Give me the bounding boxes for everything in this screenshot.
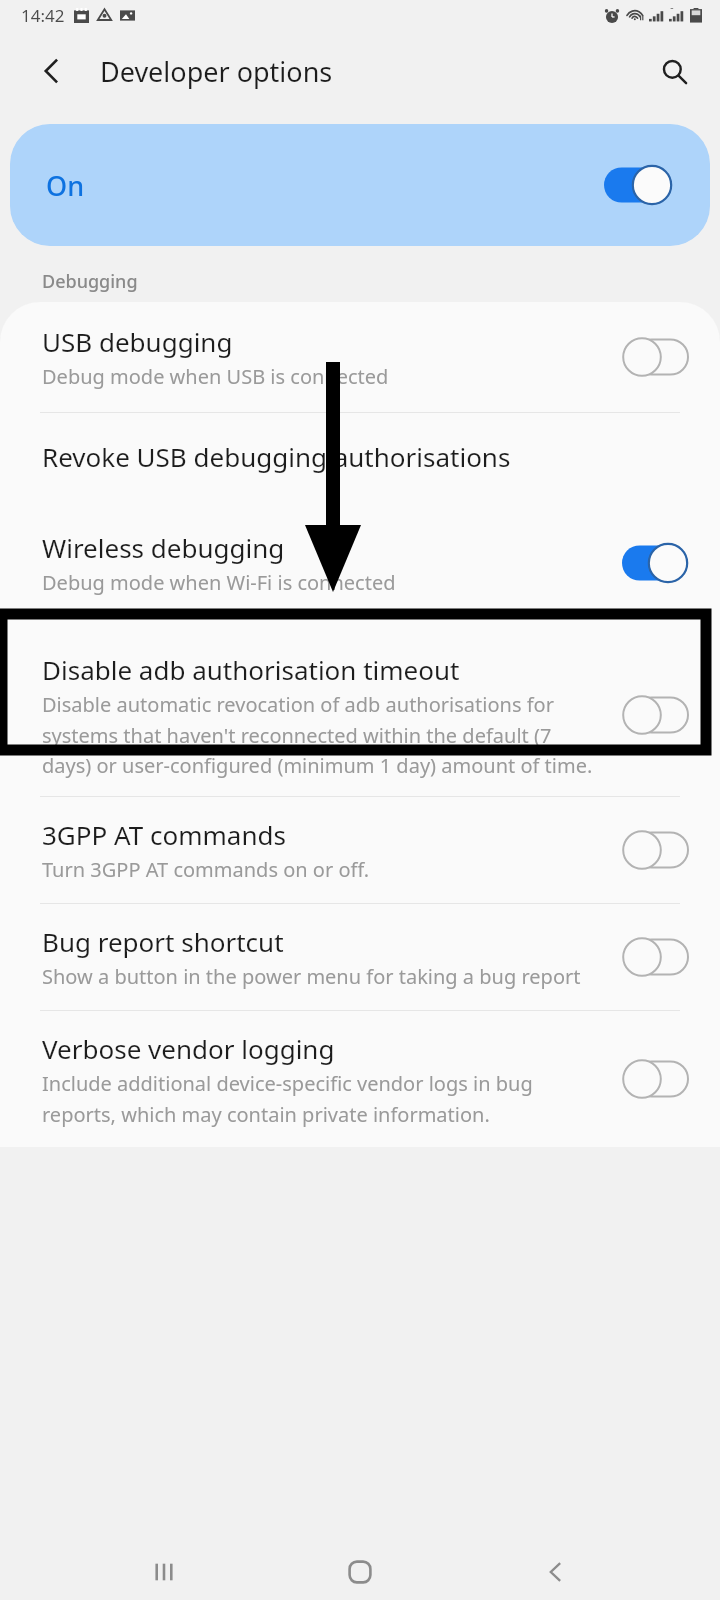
button[interactable]: Toggle off (622, 695, 688, 735)
staticText: Wireless debugging (42, 530, 285, 565)
button[interactable]: Toggle on (622, 543, 688, 583)
staticText: On (46, 167, 85, 204)
button[interactable]: Toggle off (622, 830, 688, 870)
button[interactable]: Disable adb authorisation timeout (0, 632, 720, 796)
staticText: Debug mode when Wi-Fi is connected (42, 569, 396, 596)
staticText: Debug mode when USB is connected (42, 363, 389, 390)
button[interactable]: Verbose vendor logging (0, 1011, 720, 1147)
staticText: Disable automatic revocation of adb auth… (42, 691, 598, 778)
button[interactable]: Search (650, 47, 698, 95)
staticText: Include additional device-specific vendo… (42, 1070, 598, 1127)
button[interactable]: 3GPP AT commands (0, 797, 720, 903)
staticText: Developer options (100, 53, 333, 90)
button[interactable]: Toggle off (622, 937, 688, 977)
button[interactable]: Home (328, 1544, 392, 1600)
staticText: Turn 3GPP AT commands on or off. (42, 856, 370, 883)
button[interactable]: Back (28, 47, 76, 95)
button[interactable]: On (10, 124, 710, 246)
staticText: Bug report shortcut (42, 924, 284, 959)
staticText: 3GPP AT commands (42, 817, 286, 852)
button[interactable]: USB debugging (0, 302, 720, 412)
button[interactable]: Bug report shortcut (0, 904, 720, 1010)
button[interactable]: Toggle off (622, 1059, 688, 1099)
staticText: USB debugging (42, 324, 233, 359)
button[interactable]: Wireless debugging (0, 496, 720, 632)
staticText: Verbose vendor logging (42, 1031, 335, 1066)
staticText: Show a button in the power menu for taki… (42, 963, 581, 990)
button[interactable]: Revoke USB debugging authorisations (0, 413, 720, 496)
button[interactable]: Back (524, 1544, 588, 1600)
staticText: 14:42 (21, 4, 65, 27)
staticText: Disable adb authorisation timeout (42, 652, 460, 687)
staticText: Debugging (42, 269, 138, 294)
staticText: Revoke USB debugging authorisations (42, 439, 511, 474)
button[interactable]: Toggle off (622, 337, 688, 377)
button[interactable]: Recent apps (132, 1544, 196, 1600)
button[interactable]: Toggle on (604, 165, 672, 205)
